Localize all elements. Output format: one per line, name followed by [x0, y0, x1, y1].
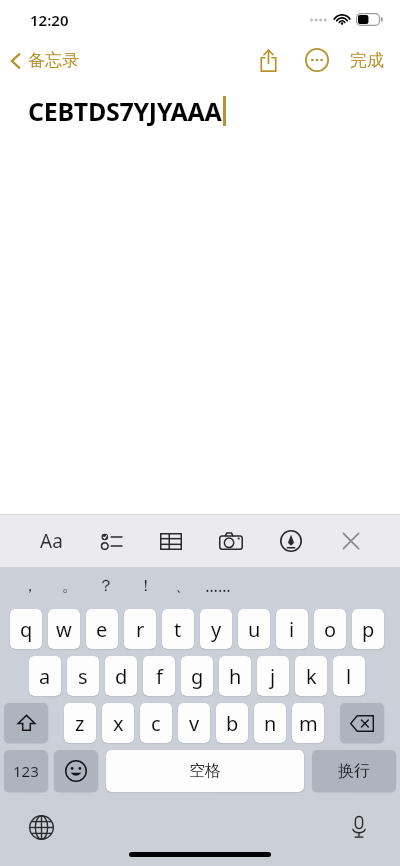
button[interactable]: r [124, 609, 156, 649]
button[interactable]: s [67, 656, 99, 696]
button[interactable]: h [219, 656, 251, 696]
button[interactable]: y [200, 609, 232, 649]
staticText: 。 [62, 576, 78, 596]
button[interactable]: Close keyboard [334, 524, 368, 558]
staticText: 空格 [189, 761, 221, 781]
staticText: ， [22, 576, 38, 596]
staticText: 123 [13, 761, 39, 781]
staticText: t [174, 616, 182, 643]
button[interactable]: z [64, 703, 96, 743]
button[interactable]: Dictation [340, 808, 378, 846]
staticText: 备忘录 [28, 50, 79, 71]
button[interactable]: 。 [52, 567, 88, 605]
button[interactable]: b [216, 703, 248, 743]
button[interactable]: 、 [165, 567, 201, 605]
button[interactable]: t [162, 609, 194, 649]
staticText: c [151, 710, 161, 737]
staticText: i [289, 616, 295, 643]
staticText: m [299, 710, 318, 737]
staticText: s [78, 663, 88, 690]
button[interactable]: 备忘录 [0, 46, 89, 75]
button[interactable]: o [314, 609, 346, 649]
button[interactable]: Text format [34, 524, 68, 558]
staticText: Aa [40, 528, 63, 554]
button[interactable]: Emoji [54, 750, 98, 792]
button[interactable]: Share [250, 42, 286, 78]
button[interactable]: Camera [214, 524, 248, 558]
staticText: y [211, 616, 222, 643]
button[interactable]: ！ [128, 567, 164, 605]
staticText: g [191, 663, 204, 690]
staticText: o [324, 616, 337, 643]
button[interactable]: f [143, 656, 175, 696]
staticText: e [96, 616, 108, 643]
staticText: 完成 [350, 50, 384, 71]
button[interactable]: p [352, 609, 384, 649]
staticText: 换行 [338, 761, 370, 781]
staticText: n [264, 710, 277, 737]
staticText: …… [205, 575, 231, 597]
button[interactable]: Shift [4, 703, 48, 743]
staticText: p [362, 616, 375, 643]
button[interactable]: x [102, 703, 134, 743]
staticText: a [39, 663, 51, 690]
staticText: v [189, 710, 200, 737]
button[interactable]: Checklist [94, 524, 128, 558]
button[interactable]: …… [200, 567, 236, 605]
button[interactable]: g [181, 656, 213, 696]
button[interactable]: j [257, 656, 289, 696]
staticText: 、 [175, 576, 191, 596]
button[interactable]: q [10, 609, 42, 649]
button[interactable]: 空格 [106, 750, 304, 792]
button[interactable]: 完成 [346, 44, 388, 77]
button[interactable]: Table [154, 524, 188, 558]
button[interactable]: 换行 [312, 750, 396, 792]
staticText: r [136, 616, 145, 643]
button[interactable]: m [292, 703, 324, 743]
button[interactable]: ？ [88, 567, 124, 605]
staticText: x [113, 710, 124, 737]
button[interactable]: u [238, 609, 270, 649]
staticText: z [75, 710, 85, 737]
button[interactable]: c [140, 703, 172, 743]
button[interactable]: Delete [340, 703, 384, 743]
button[interactable]: d [105, 656, 137, 696]
button[interactable]: l [333, 656, 365, 696]
button[interactable]: ， [12, 567, 48, 605]
button[interactable]: k [295, 656, 327, 696]
staticText: ！ [138, 576, 154, 596]
button[interactable]: w [48, 609, 80, 649]
button[interactable]: Markup [274, 524, 308, 558]
button[interactable]: a [29, 656, 61, 696]
button[interactable]: Switch keyboard [22, 808, 60, 846]
staticText: f [156, 663, 163, 690]
button[interactable]: v [178, 703, 210, 743]
staticText: q [20, 616, 33, 643]
button[interactable]: More options [300, 43, 334, 77]
button[interactable]: 123 [4, 750, 48, 792]
staticText: 12:20 [30, 10, 69, 30]
staticText: CEBTDS7YJYAAA [28, 94, 222, 128]
staticText: b [226, 710, 239, 737]
staticText: d [115, 663, 128, 690]
button[interactable]: i [276, 609, 308, 649]
staticText: j [270, 663, 276, 690]
staticText: l [346, 663, 352, 690]
button[interactable]: n [254, 703, 286, 743]
button[interactable]: e [86, 609, 118, 649]
staticText: h [229, 663, 242, 690]
staticText: ？ [98, 576, 114, 596]
staticText: k [306, 663, 317, 690]
staticText: u [248, 616, 261, 643]
staticText: w [56, 616, 72, 643]
